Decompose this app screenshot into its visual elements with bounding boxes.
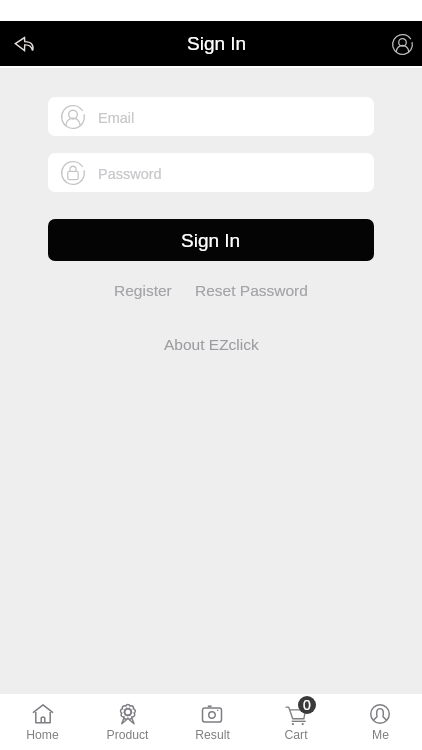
button[interactable]: Reset Password <box>190 277 313 304</box>
button[interactable]: 0 <box>254 694 338 742</box>
staticText: Result <box>195 728 230 742</box>
button[interactable]: Me <box>338 694 422 742</box>
staticText: About EZclick <box>164 336 259 353</box>
button[interactable]: Password <box>48 153 374 192</box>
button[interactable]: Home <box>0 694 85 742</box>
staticText: Sign In <box>187 33 247 54</box>
staticText: Email <box>98 110 135 126</box>
button[interactable]: Product <box>85 694 170 742</box>
button[interactable]: Register <box>109 277 177 304</box>
staticText: Product <box>106 728 149 742</box>
button[interactable]: Back <box>7 27 41 61</box>
button[interactable]: Sign In <box>48 219 374 261</box>
staticText: Register <box>114 282 172 299</box>
staticText: Password <box>98 166 162 182</box>
staticText: Cart <box>284 728 308 742</box>
button[interactable]: Email <box>48 97 374 136</box>
button[interactable]: About EZclick <box>156 331 267 358</box>
staticText: Me <box>372 728 389 742</box>
staticText: 0 <box>303 697 311 713</box>
button[interactable]: Result <box>170 694 254 742</box>
staticText: Sign In <box>181 230 241 251</box>
staticText: Home <box>26 728 59 742</box>
button[interactable]: Account <box>385 27 419 61</box>
staticText: Reset Password <box>195 282 308 299</box>
